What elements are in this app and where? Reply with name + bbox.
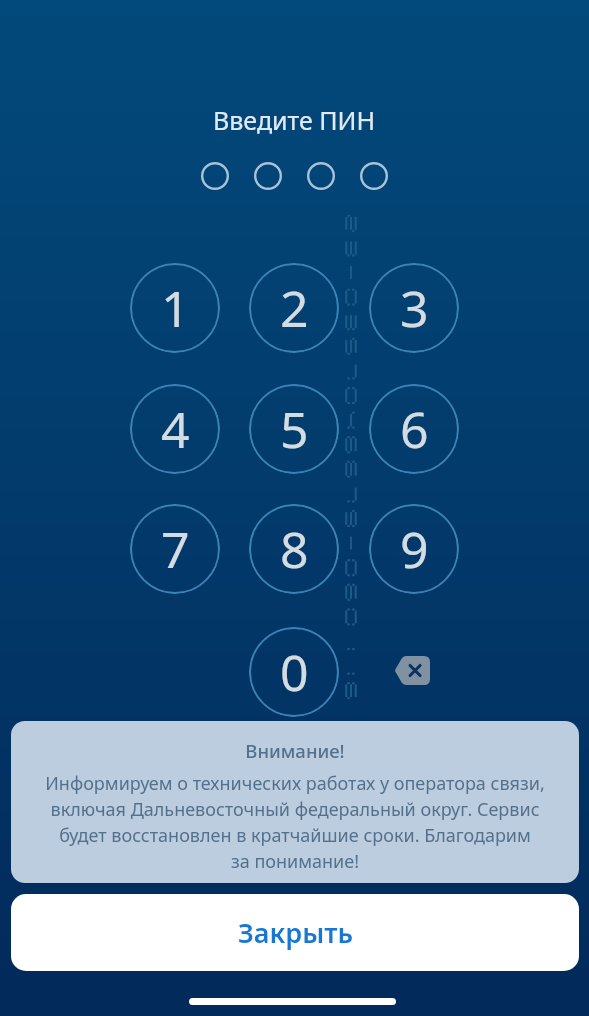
staticText: 0 [280, 638, 309, 706]
staticText: 4 [161, 395, 190, 463]
button[interactable]: 8 [249, 504, 339, 594]
staticText: 8 [280, 515, 309, 583]
button[interactable]: 1 [130, 263, 220, 353]
button[interactable]: 3 [369, 263, 459, 353]
button[interactable]: Закрыть [11, 894, 579, 971]
staticText: 6 [400, 395, 429, 463]
staticText: 9 [400, 515, 429, 583]
staticText: 7 [161, 515, 190, 583]
staticText: Введите ПИН [213, 103, 376, 137]
button[interactable]: 7 [130, 504, 220, 594]
button[interactable]: 5 [249, 384, 339, 474]
staticText: 2 [280, 274, 309, 342]
button[interactable]: 4 [130, 384, 220, 474]
button[interactable]: 9 [369, 504, 459, 594]
button[interactable]: 2 [249, 263, 339, 353]
staticText: 3 [400, 274, 429, 342]
button[interactable]: 6 [369, 384, 459, 474]
staticText: 5 [280, 395, 309, 463]
staticText: Информируем о технических работах у опер… [45, 771, 545, 874]
staticText: 1 [161, 274, 190, 342]
button[interactable]: Стереть [378, 646, 446, 694]
staticText: Внимание! [245, 738, 345, 763]
button[interactable]: 0 [249, 627, 339, 717]
staticText: Закрыть [238, 914, 353, 951]
button[interactable]: Внимание! [11, 721, 579, 883]
